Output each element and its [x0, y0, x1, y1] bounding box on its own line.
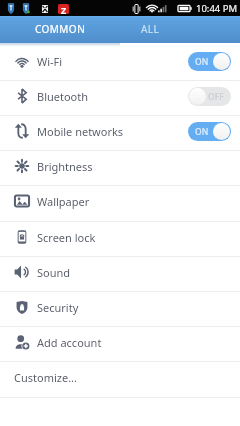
staticText: Screen lock — [37, 230, 96, 245]
staticText: Wi-Fi — [37, 54, 63, 69]
button[interactable]: Bluetooth off — [188, 87, 231, 106]
button[interactable]: Wallpaper — [0, 184, 240, 218]
button[interactable]: COMMON — [0, 16, 120, 43]
staticText: OFF — [208, 91, 224, 103]
staticText: Wallpaper — [37, 194, 90, 209]
staticText: Customize... — [14, 370, 77, 385]
button[interactable]: Bluetooth — [0, 79, 240, 113]
staticText: Brightness — [37, 159, 93, 174]
staticText: ON — [195, 56, 209, 68]
button[interactable]: Mobile networks on — [188, 122, 231, 141]
button[interactable]: Security — [0, 290, 240, 324]
button[interactable]: Customize... — [0, 360, 240, 394]
staticText: ALL — [141, 22, 160, 36]
staticText: Bluetooth — [37, 89, 89, 104]
button[interactable]: ALL — [120, 16, 180, 43]
button[interactable]: Wi-Fi — [0, 44, 240, 78]
staticText: ON — [195, 126, 209, 138]
button[interactable]: Wi-Fi on — [188, 52, 231, 71]
button[interactable]: Screen lock — [0, 220, 240, 254]
staticText: Mobile networks — [37, 124, 124, 139]
button[interactable]: Sound — [0, 255, 240, 289]
button[interactable]: Add account — [0, 325, 240, 359]
staticText: Add account — [37, 335, 102, 350]
button[interactable]: Mobile networks — [0, 114, 240, 148]
button[interactable]: Brightness — [0, 149, 240, 183]
staticText: Security — [37, 300, 79, 315]
staticText: Z — [61, 4, 67, 14]
staticText: 10:44 PM — [196, 2, 238, 15]
staticText: Sound — [37, 265, 71, 280]
staticText: COMMON — [35, 22, 86, 36]
